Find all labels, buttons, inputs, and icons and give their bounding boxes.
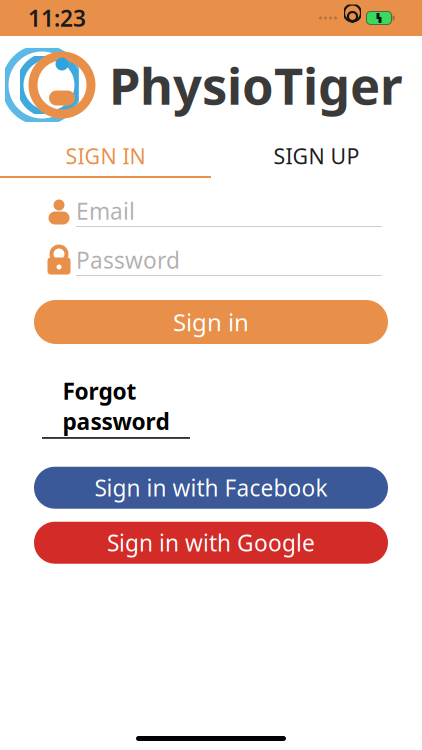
button[interactable]: Sign in with Google (34, 522, 388, 564)
staticText: SIGN IN (65, 142, 145, 170)
button[interactable]: Sign in (34, 300, 388, 344)
staticText: Email (76, 196, 135, 226)
staticText: Sign in (173, 306, 249, 338)
button[interactable]: Sign in with Facebook (34, 467, 388, 509)
staticText: SIGN UP (273, 142, 359, 170)
staticText: PhysioTiger (109, 51, 403, 119)
staticText: Sign in with Google (107, 528, 315, 558)
button[interactable]: Forgot password (42, 376, 190, 439)
button[interactable]: SIGN UP (211, 136, 422, 176)
button[interactable]: SIGN IN (0, 136, 211, 176)
staticText: Forgot password (62, 376, 169, 436)
staticText: Sign in with Facebook (94, 473, 327, 503)
staticText: 11:23 (28, 3, 86, 33)
staticText: Password (76, 245, 180, 275)
